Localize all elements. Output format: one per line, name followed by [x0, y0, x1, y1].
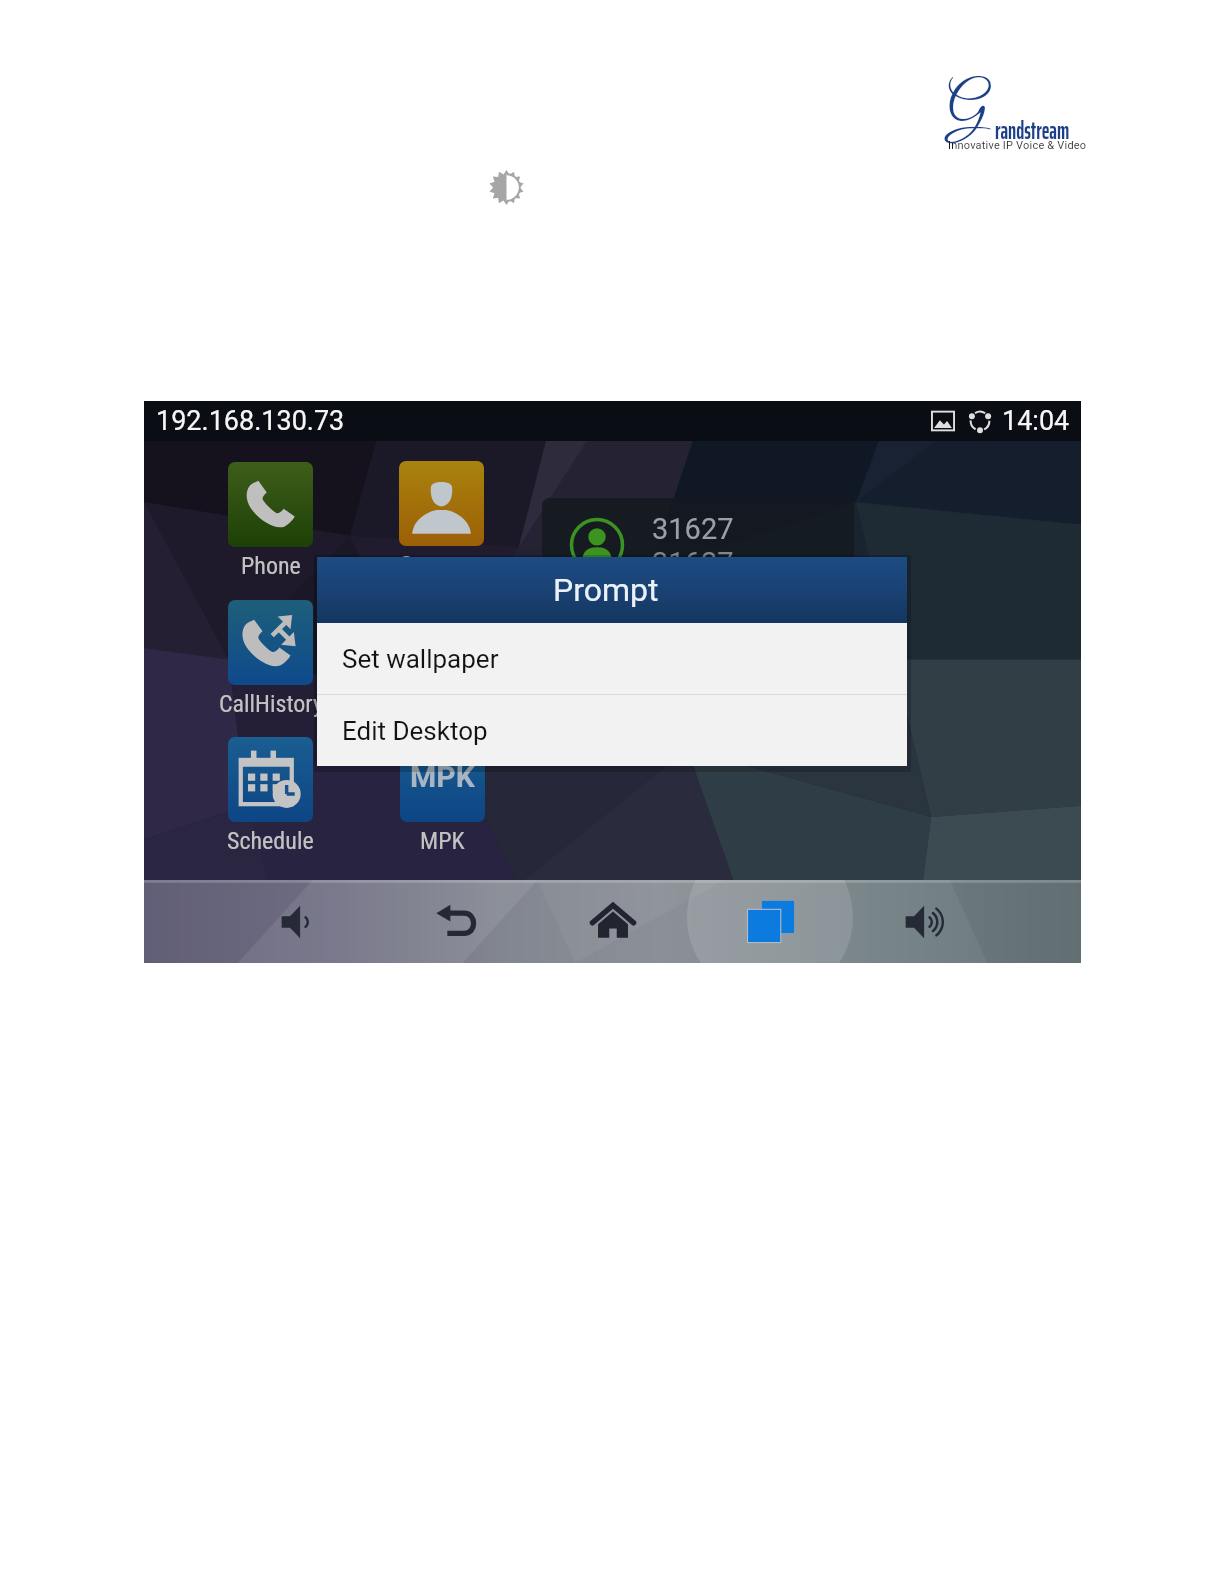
staticText: 192.168.130.73	[156, 405, 345, 437]
button[interactable]: Schedule	[208, 737, 333, 855]
button[interactable]: Contacts	[379, 461, 504, 579]
staticText: 31627	[652, 512, 734, 546]
button[interactable]: Back	[407, 880, 507, 963]
staticText: Schedule	[227, 827, 314, 855]
staticText: G	[947, 75, 986, 144]
button[interactable]: Edit Desktop	[317, 695, 907, 766]
staticText: Set wallpaper	[342, 644, 499, 674]
button[interactable]: 31627	[542, 498, 854, 602]
button[interactable]: Phone	[208, 462, 333, 580]
button[interactable]: Volume down	[251, 880, 351, 963]
other: Brightness	[489, 170, 524, 205]
staticText: CallHistory	[219, 690, 323, 718]
button[interactable]: Set wallpaper	[317, 623, 907, 694]
staticText: MPK	[420, 827, 465, 855]
button[interactable]: Home	[563, 880, 663, 963]
staticText: Prompt	[553, 571, 659, 609]
staticText: randstream	[995, 111, 1069, 150]
staticText: MPK	[410, 759, 475, 794]
staticText: Edit Desktop	[342, 716, 488, 746]
staticText: Phone	[241, 552, 301, 580]
staticText: 14:04	[1002, 405, 1070, 437]
button[interactable]: Volume up	[875, 880, 975, 963]
button[interactable]: CallHistory	[208, 600, 333, 718]
staticText: Contacts	[399, 551, 485, 579]
staticText: Innovative IP Voice & Video	[948, 139, 1087, 152]
staticText: 31627	[652, 546, 734, 580]
button[interactable]: MPK	[380, 737, 505, 855]
button[interactable]: Recent apps	[719, 880, 819, 963]
